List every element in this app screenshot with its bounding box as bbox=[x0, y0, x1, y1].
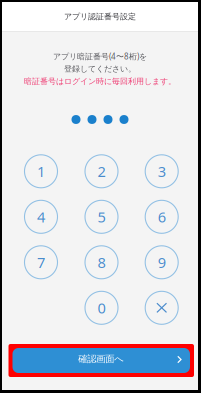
button[interactable]: 4 bbox=[24, 200, 57, 233]
button[interactable]: 0 bbox=[85, 291, 118, 324]
staticText: 1 bbox=[37, 162, 45, 181]
button[interactable]: 8 bbox=[85, 246, 118, 279]
staticText: 4 bbox=[37, 207, 45, 227]
staticText: アプリ暗証番号(4〜8桁)を bbox=[53, 51, 147, 62]
staticText: 0 bbox=[97, 298, 105, 318]
staticText: 6 bbox=[158, 207, 166, 227]
staticText: 5 bbox=[97, 207, 105, 227]
button[interactable]: 9 bbox=[145, 246, 178, 279]
staticText: 7 bbox=[37, 253, 45, 272]
button[interactable]: 5 bbox=[85, 200, 118, 233]
button[interactable]: 7 bbox=[24, 246, 57, 279]
staticText: 9 bbox=[158, 253, 166, 272]
button[interactable]: 2 bbox=[85, 155, 118, 188]
staticText: アプリ認証番号設定 bbox=[64, 12, 136, 21]
staticText: 3 bbox=[158, 162, 166, 181]
staticText: 8 bbox=[97, 253, 105, 272]
staticText: 2 bbox=[97, 162, 105, 181]
staticText: 確認画面へ bbox=[78, 353, 124, 365]
button[interactable]: 6 bbox=[145, 200, 178, 233]
button[interactable] bbox=[145, 291, 178, 324]
button[interactable]: 確認画面へ bbox=[12, 348, 190, 373]
staticText: 登録してください。 bbox=[64, 64, 136, 74]
button[interactable]: 1 bbox=[24, 155, 57, 188]
button[interactable]: 3 bbox=[145, 155, 178, 188]
staticText: 暗証番号はログイン時に毎回利用します。 bbox=[24, 76, 176, 86]
